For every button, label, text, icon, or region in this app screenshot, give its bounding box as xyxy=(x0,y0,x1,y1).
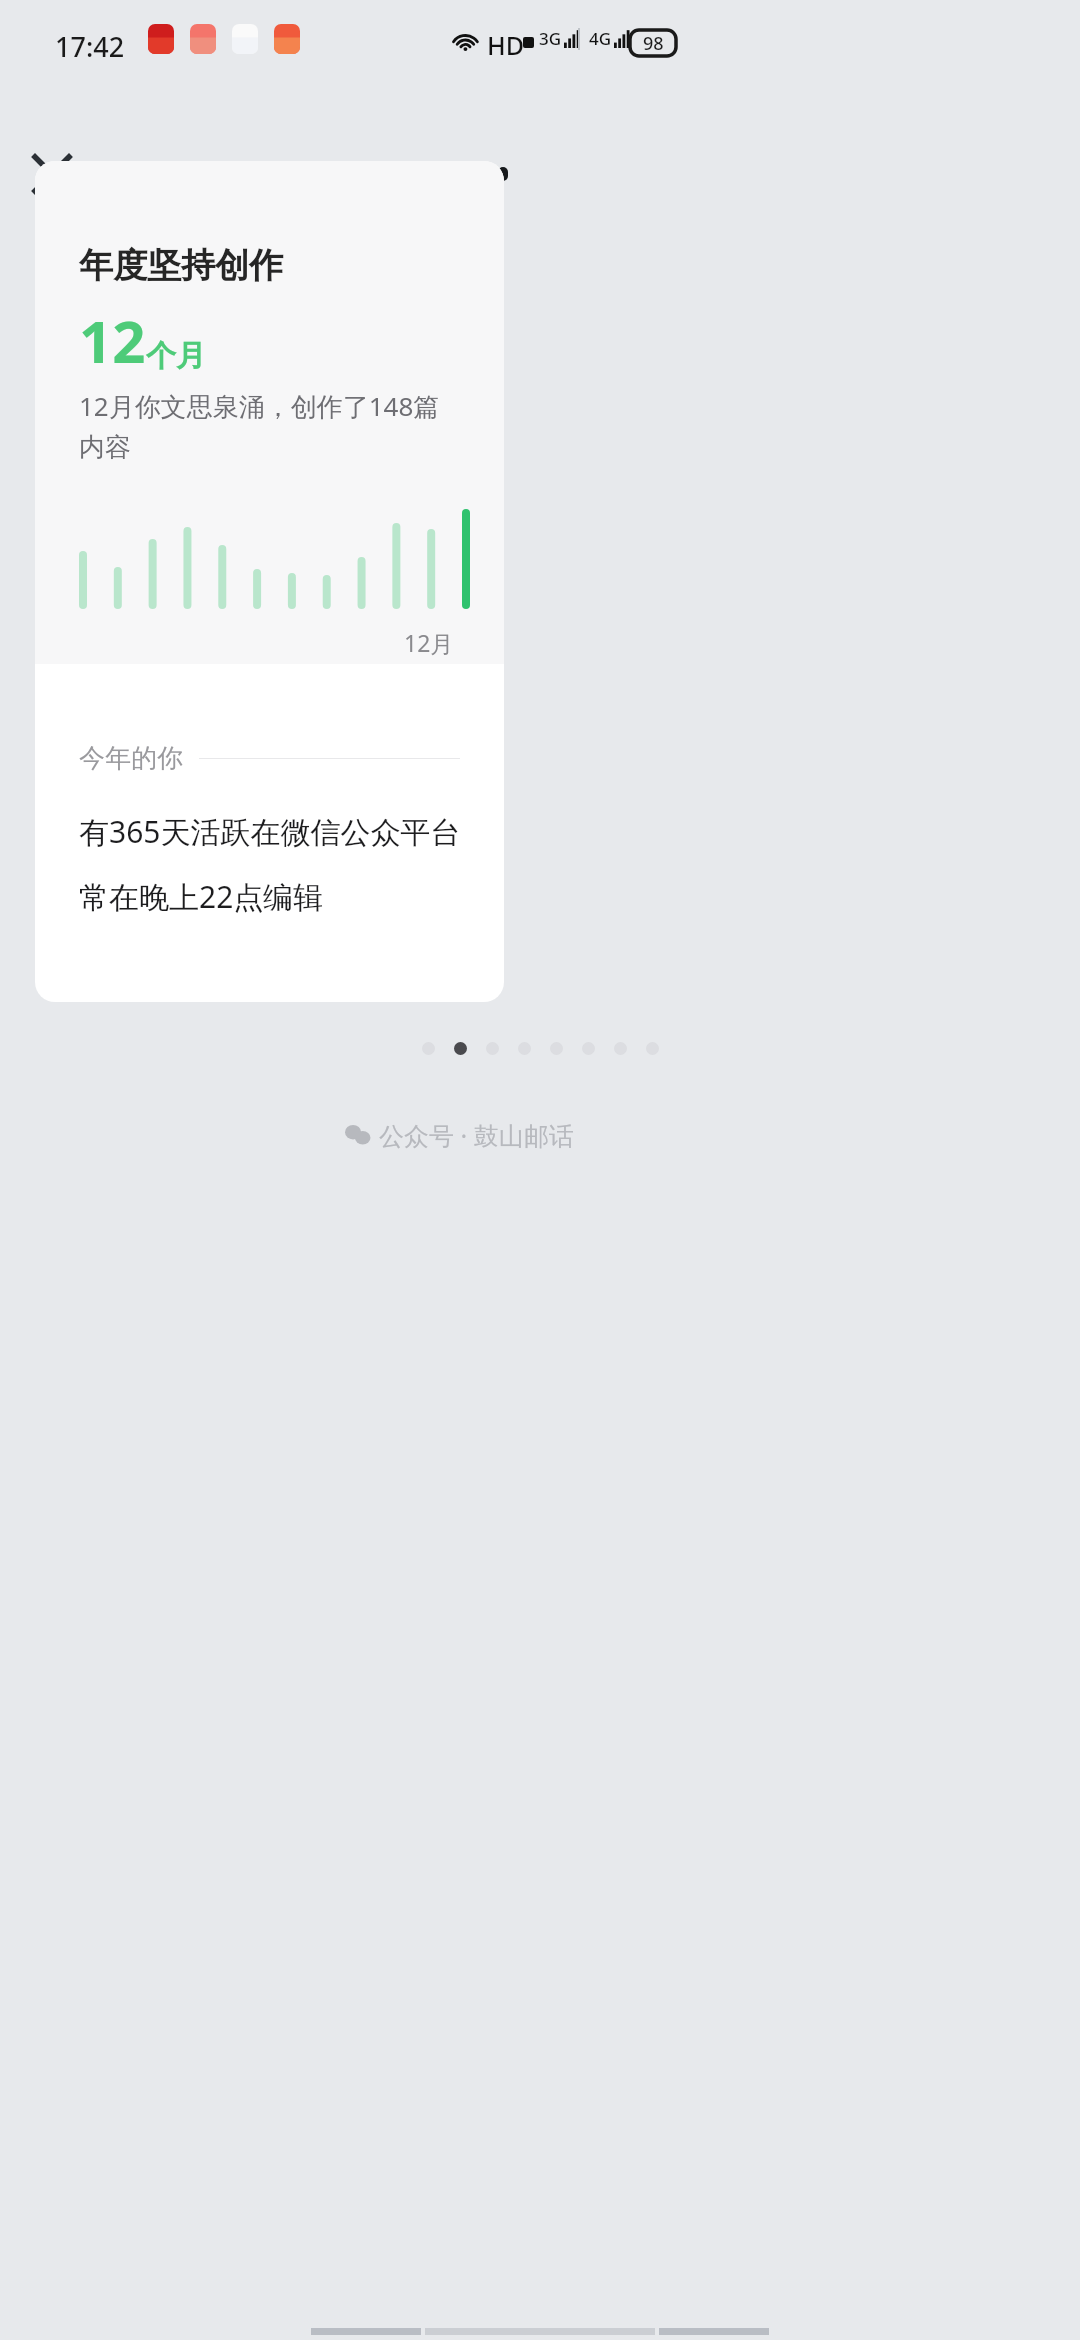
button[interactable] xyxy=(518,1042,531,1055)
button[interactable]: Close xyxy=(24,146,80,202)
button[interactable]: More options xyxy=(452,148,508,200)
staticText: 3G xyxy=(539,27,562,50)
staticText: 常在晚上22点编辑 xyxy=(79,876,324,917)
button[interactable]: 年度坚持创作 xyxy=(35,161,504,1002)
button[interactable] xyxy=(646,1042,659,1055)
staticText: 12月你文思泉涌，创作了148篇内容 xyxy=(79,388,456,464)
staticText: 年度坚持创作 xyxy=(79,244,283,287)
button[interactable] xyxy=(550,1042,563,1055)
staticText: 有365天活跃在微信公众平台 xyxy=(79,811,461,852)
staticText: 公众号 · 鼓山邮话 xyxy=(379,1118,574,1152)
staticText: 17:42 xyxy=(55,28,125,65)
staticText: 4G xyxy=(589,27,612,50)
button[interactable] xyxy=(582,1042,595,1055)
staticText: 个月 xyxy=(146,337,206,375)
staticText: 12月 xyxy=(404,627,454,658)
button[interactable] xyxy=(422,1042,435,1055)
button[interactable] xyxy=(486,1042,499,1055)
staticText: 今年的你 xyxy=(79,742,183,775)
button[interactable] xyxy=(454,1042,467,1055)
staticText: 98 xyxy=(643,31,664,56)
button[interactable] xyxy=(614,1042,627,1055)
staticText: HD xyxy=(487,28,524,62)
staticText: 12 xyxy=(79,301,146,380)
